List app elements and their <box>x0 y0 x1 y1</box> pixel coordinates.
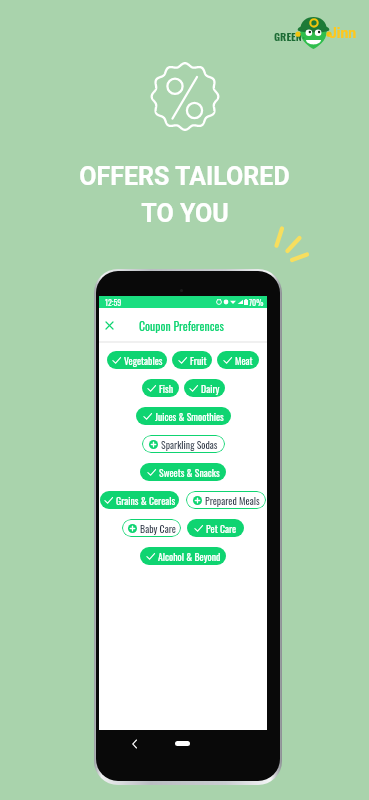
staticText: 70% <box>249 296 264 308</box>
staticText: Fruit <box>190 353 207 368</box>
staticText: TO YOU <box>141 199 229 228</box>
staticText: Grains & Cereals <box>116 493 176 508</box>
staticText: Baby Care <box>140 521 176 536</box>
button[interactable]: Sparkling Sodas <box>142 435 225 453</box>
staticText: GREEN <box>274 28 302 44</box>
button[interactable]: Close <box>102 318 117 333</box>
staticText: Sweets & Snacks <box>159 465 220 480</box>
button[interactable]: Sweets & Snacks <box>140 463 226 481</box>
button[interactable]: Alcohol & Beyond <box>140 547 226 565</box>
staticText: Pet Care <box>206 521 237 536</box>
staticText: 12:59 <box>105 296 122 308</box>
button[interactable]: Dairy <box>184 379 225 397</box>
staticText: Sparkling Sodas <box>161 437 218 452</box>
staticText: Jinn <box>329 25 357 41</box>
button[interactable]: Baby Care <box>122 519 181 537</box>
button[interactable]: Juices & Smoothies <box>136 407 231 425</box>
staticText: Alcohol & Beyond <box>158 549 221 564</box>
button[interactable]: Meat <box>217 351 259 369</box>
staticText: Dairy <box>201 381 220 396</box>
button[interactable]: Pet Care <box>187 519 244 537</box>
staticText: Vegetables <box>124 353 163 368</box>
staticText: Juices & Smoothies <box>155 409 224 424</box>
button[interactable]: Prepared Meals <box>186 491 266 509</box>
button[interactable]: Grains & Cereals <box>100 491 179 509</box>
staticText: Coupon Preferences <box>139 317 224 334</box>
staticText: OFFERS TAILORED <box>79 162 290 191</box>
button[interactable]: Fruit <box>172 351 212 369</box>
button[interactable]: Fish <box>142 379 179 397</box>
staticText: Fish <box>159 381 174 396</box>
staticText: Prepared Meals <box>205 493 260 508</box>
button[interactable]: Vegetables <box>107 351 167 369</box>
staticText: Meat <box>235 353 253 368</box>
